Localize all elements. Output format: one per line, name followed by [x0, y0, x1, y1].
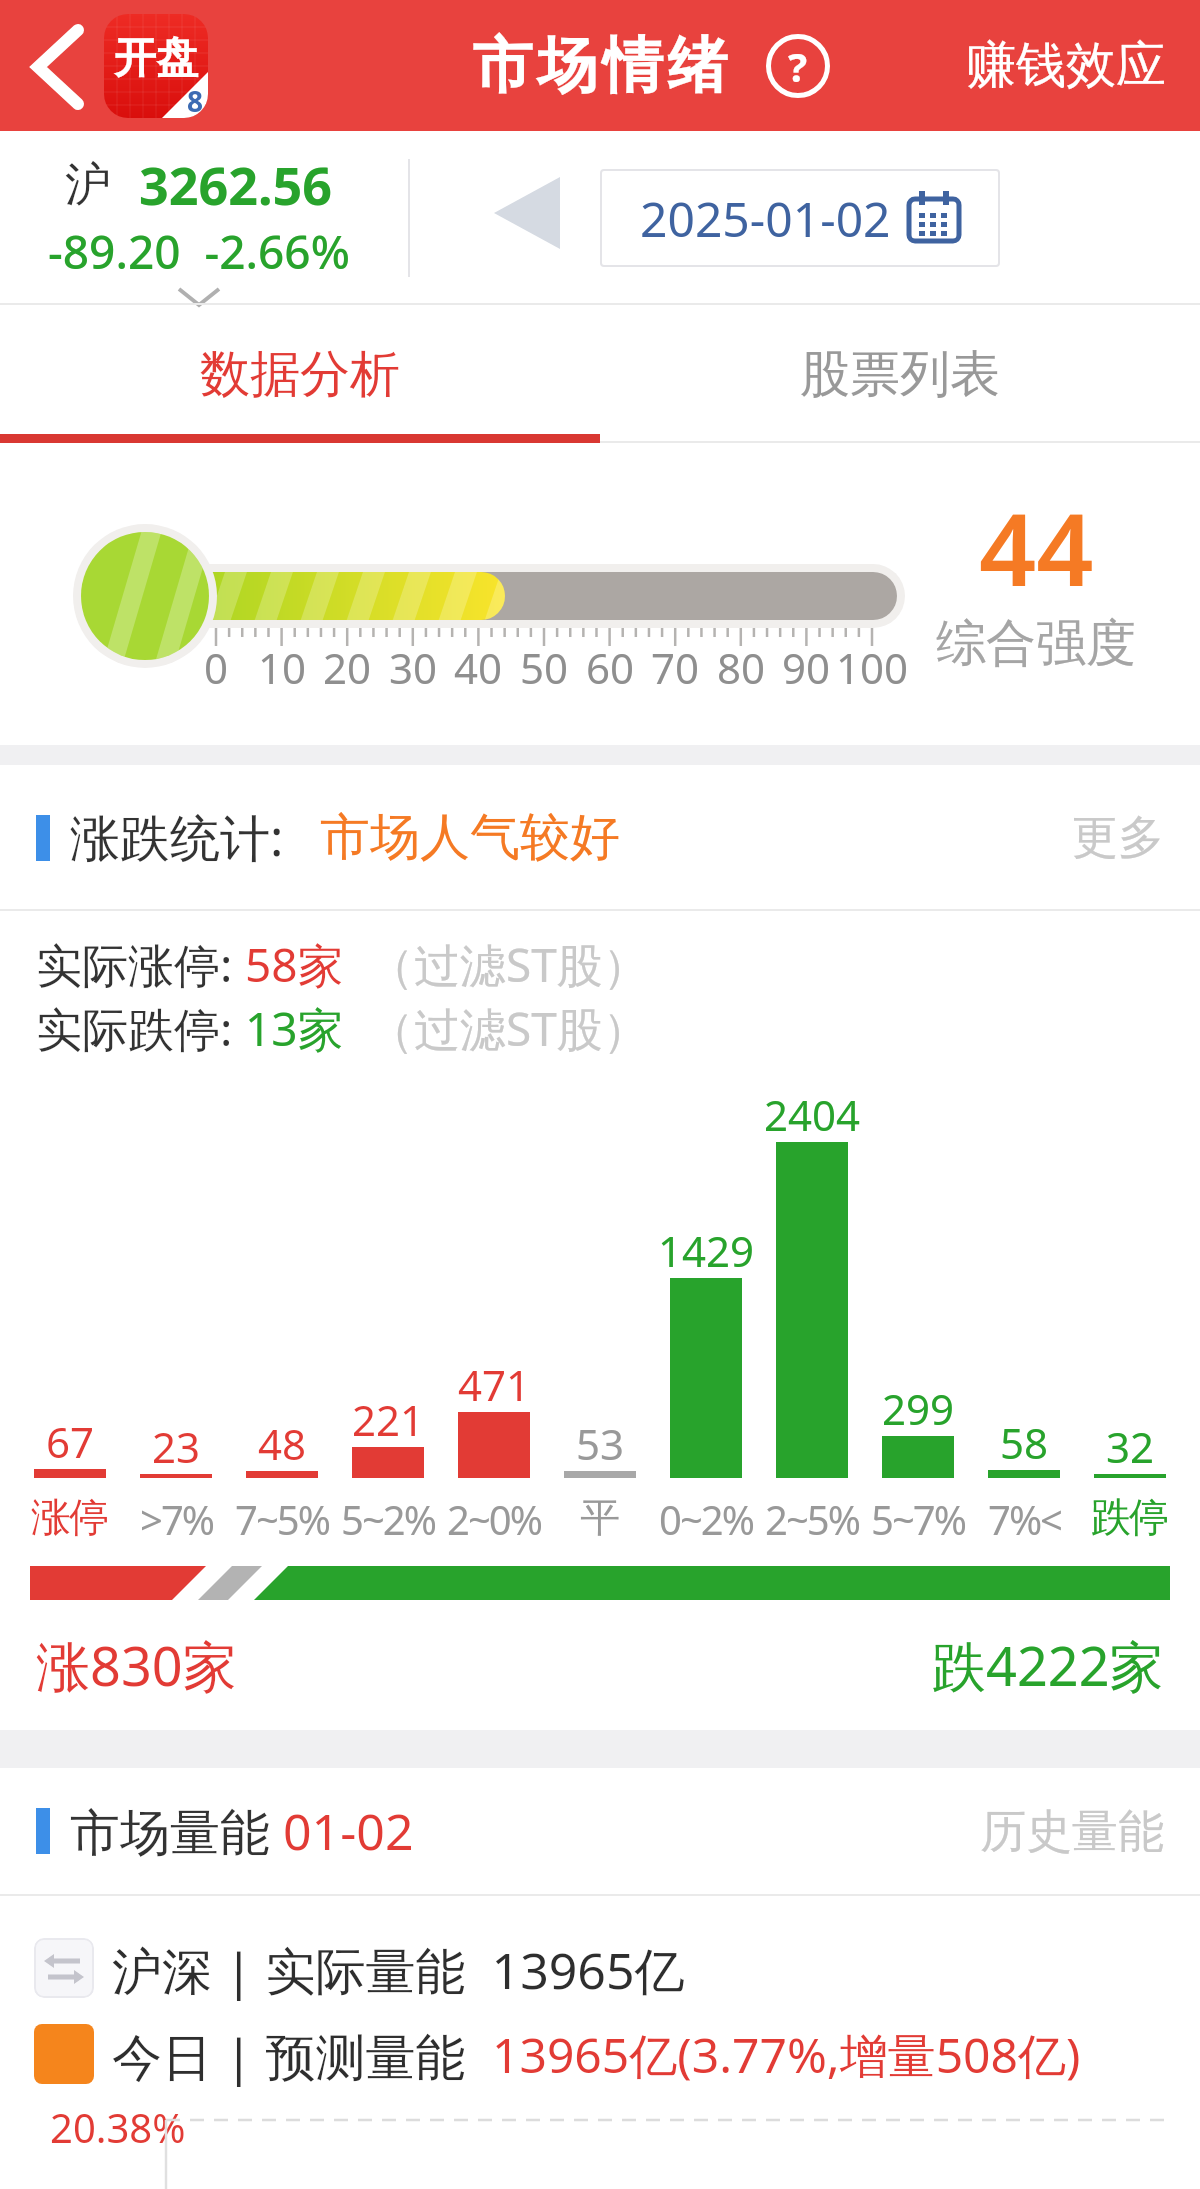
staticText: 100	[836, 639, 909, 691]
staticText: 7%<	[988, 1492, 1061, 1546]
staticText: 综合强度	[936, 612, 1136, 675]
staticText: 市场人气较好	[320, 806, 620, 869]
staticText: 20.38%	[50, 2100, 186, 2154]
staticText: 20	[323, 639, 372, 691]
staticText: 60	[586, 639, 635, 691]
staticText: 471	[458, 1356, 531, 1408]
staticText: 赚钱效应	[966, 34, 1166, 97]
staticText: 涨830家	[36, 1628, 237, 1702]
staticText: 80	[717, 639, 766, 691]
staticText: 67	[46, 1413, 95, 1465]
staticText: 23	[152, 1418, 201, 1470]
staticText: 2404	[764, 1086, 861, 1138]
staticText: 更多	[1072, 809, 1164, 867]
staticText: -89.20 -2.66%	[48, 220, 350, 283]
button[interactable]: 更多	[1072, 809, 1164, 867]
staticText: 50	[520, 639, 569, 691]
staticText: 今日 | 预测量能	[112, 2022, 492, 2090]
staticText: 58家	[245, 933, 344, 996]
staticText: 0	[204, 639, 229, 691]
staticText: 8	[187, 82, 204, 118]
staticText: 实际跌停:	[36, 997, 245, 1060]
staticText: 沪	[65, 156, 111, 214]
staticText: 32	[1106, 1418, 1155, 1470]
staticText: 2~0%	[447, 1492, 541, 1546]
button[interactable]	[20, 20, 90, 110]
staticText: 13家	[245, 997, 344, 1060]
staticText: 沪深 | 实际量能 13965亿	[112, 1936, 685, 2004]
staticText: 221	[352, 1391, 425, 1443]
staticText: 01-02	[283, 1797, 414, 1865]
staticText: 44	[979, 479, 1094, 599]
staticText: 5~7%	[871, 1492, 965, 1546]
staticText: 90	[782, 639, 831, 691]
staticText: 历史量能	[980, 1803, 1164, 1861]
staticText: （过滤ST股）	[344, 933, 649, 996]
button[interactable]: 数据分析	[0, 305, 600, 443]
staticText: 涨停	[32, 1492, 108, 1542]
staticText: 13965亿(3.77%,增量508亿)	[492, 2022, 1081, 2088]
button[interactable]: 赚钱效应	[966, 34, 1166, 97]
staticText: 涨跌统计:	[70, 803, 284, 871]
staticText: 48	[258, 1415, 307, 1467]
staticText: 实际涨停:	[36, 933, 245, 996]
staticText: 2025-01-02	[640, 186, 891, 251]
staticText: 市场量能	[70, 1797, 283, 1865]
staticText: 10	[258, 639, 307, 691]
button[interactable]: 股票列表	[600, 305, 1200, 443]
button[interactable]: 2025-01-02	[600, 169, 1000, 267]
staticText: ?	[788, 39, 808, 93]
staticText: >7%	[140, 1492, 213, 1546]
staticText: 299	[882, 1380, 955, 1432]
button[interactable]: ?	[766, 34, 830, 98]
staticText: 数据分析	[200, 343, 400, 406]
staticText: 1429	[658, 1222, 755, 1274]
staticText: 股票列表	[800, 343, 1000, 406]
staticText: 跌停	[1092, 1492, 1168, 1542]
staticText: （过滤ST股）	[344, 997, 649, 1060]
staticText: 市场情绪	[470, 28, 730, 104]
staticText: 58	[1000, 1414, 1049, 1466]
staticText: 开盘	[114, 32, 198, 85]
staticText: 3262.56	[139, 149, 333, 220]
staticText: 7~5%	[235, 1492, 329, 1546]
staticText: 70	[651, 639, 700, 691]
staticText: 30	[389, 639, 438, 691]
staticText: 53	[576, 1415, 625, 1467]
button[interactable]: 开盘	[104, 14, 208, 118]
staticText: 跌4222家	[932, 1628, 1164, 1702]
staticText: 40	[454, 639, 503, 691]
staticText: 0~2%	[659, 1492, 753, 1546]
button[interactable]: 历史量能	[980, 1803, 1164, 1861]
staticText: 平	[581, 1492, 619, 1542]
staticText: 5~2%	[341, 1492, 435, 1546]
staticText: 2~5%	[765, 1492, 859, 1546]
